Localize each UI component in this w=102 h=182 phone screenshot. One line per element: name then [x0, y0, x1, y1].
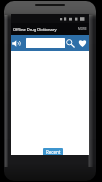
button[interactable]: Recent [43, 148, 63, 155]
staticText: MORE [78, 27, 87, 31]
button[interactable]: Speak [11, 35, 22, 51]
button[interactable]: MORE [76, 27, 89, 31]
staticText: Recent [46, 149, 61, 155]
staticText: Offline Drug Dictionary [13, 27, 57, 32]
button[interactable]: Search [64, 35, 76, 51]
button[interactable]: Favorites [76, 35, 89, 51]
